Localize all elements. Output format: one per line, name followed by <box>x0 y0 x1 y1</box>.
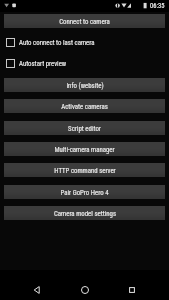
button[interactable]: Activate cameras <box>4 99 165 113</box>
staticText: Script editor <box>68 125 101 133</box>
button[interactable]: Recents <box>117 275 147 300</box>
staticText: Pair GoPro Hero 4 <box>60 189 109 197</box>
staticText: Autostart preview <box>19 60 67 68</box>
button[interactable]: HTTP command server <box>4 163 165 177</box>
button[interactable]: Autostart preview <box>0 57 169 69</box>
button[interactable]: Home <box>70 275 100 300</box>
button[interactable]: Back <box>22 275 52 300</box>
staticText: HTTP command server <box>54 167 116 175</box>
button[interactable]: Camera model settings <box>4 206 165 220</box>
staticText: Info (website) <box>66 82 104 90</box>
staticText: Auto connect to last camera <box>19 39 95 47</box>
staticText: 06:35 <box>150 2 165 10</box>
button[interactable]: Pair GoPro Hero 4 <box>4 185 165 199</box>
staticText: Connect to camera <box>59 18 110 26</box>
staticText: Activate cameras <box>61 103 108 111</box>
button[interactable]: Connect to camera <box>4 14 165 28</box>
button[interactable]: Auto connect to last camera <box>0 36 169 48</box>
staticText: Multi-camera manager <box>54 146 115 154</box>
button[interactable]: Info (website) <box>4 78 165 92</box>
staticText: Camera model settings <box>54 210 116 218</box>
button[interactable]: Script editor <box>4 121 165 135</box>
button[interactable]: Multi-camera manager <box>4 142 165 156</box>
